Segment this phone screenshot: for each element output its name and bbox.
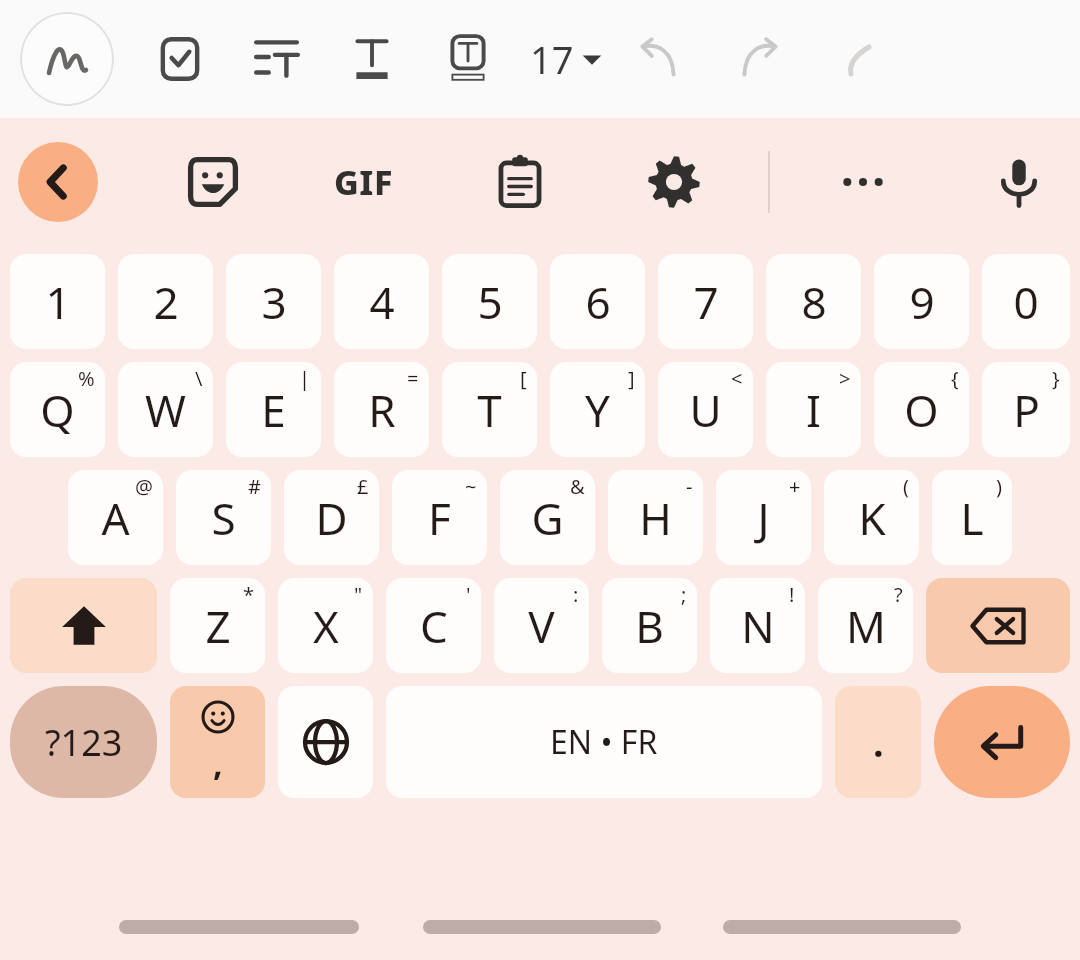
staticText: Z — [205, 596, 231, 656]
staticText: A — [101, 488, 130, 548]
staticText: R — [368, 380, 396, 440]
button[interactable]: 5 — [442, 254, 537, 349]
button[interactable]: P — [982, 362, 1070, 457]
staticText: 17 — [530, 33, 574, 85]
staticText: 9 — [909, 272, 935, 332]
button[interactable]: J — [716, 470, 811, 565]
button[interactable]: Change language — [278, 686, 373, 798]
button[interactable]: O — [874, 362, 969, 457]
staticText: O — [904, 380, 939, 440]
staticText: H — [639, 488, 672, 548]
button[interactable]: Z — [170, 578, 265, 673]
staticText: ; — [681, 581, 687, 608]
staticText: 2 — [153, 272, 179, 332]
button[interactable]: 2 — [118, 254, 213, 349]
staticText: [ — [520, 365, 527, 392]
staticText: 6 — [585, 272, 611, 332]
button[interactable]: V — [494, 578, 589, 673]
staticText: £ — [357, 473, 369, 500]
staticText: * — [243, 581, 255, 608]
button[interactable]: Clipboard — [479, 141, 561, 223]
button[interactable]: Voice input — [978, 141, 1060, 223]
button[interactable]: Handwriting — [20, 12, 114, 106]
staticText: " — [354, 581, 363, 608]
button[interactable]: K — [824, 470, 919, 565]
staticText: 8 — [801, 272, 827, 332]
button[interactable]: W — [118, 362, 213, 457]
button[interactable]: 6 — [550, 254, 645, 349]
button[interactable]: 17 — [524, 25, 609, 93]
button[interactable]: H — [608, 470, 703, 565]
staticText: E — [261, 380, 286, 440]
staticText: # — [248, 473, 261, 500]
button[interactable]: U — [658, 362, 753, 457]
staticText: 3 — [261, 272, 287, 332]
button[interactable]: GIF — [322, 141, 404, 223]
staticText: G — [531, 488, 564, 548]
staticText: 0 — [1013, 272, 1039, 332]
button[interactable]: I — [766, 362, 861, 457]
button[interactable]: Enter — [934, 686, 1070, 798]
staticText: 1 — [45, 272, 71, 332]
button[interactable]: D — [284, 470, 379, 565]
staticText: W — [145, 380, 186, 440]
staticText: ~ — [465, 473, 477, 500]
button[interactable]: ?123 — [10, 686, 157, 798]
staticText: M — [846, 596, 886, 656]
button[interactable]: More — [835, 31, 891, 87]
staticText: N — [741, 596, 775, 656]
button[interactable]: Q — [10, 362, 105, 457]
button[interactable]: Stickers — [172, 141, 254, 223]
staticText: B — [635, 596, 664, 656]
button[interactable]: Checklist — [150, 29, 210, 89]
staticText: U — [689, 380, 722, 440]
staticText: ] — [628, 365, 635, 392]
button[interactable]: N — [710, 578, 805, 673]
staticText: & — [570, 473, 585, 500]
staticText: 7 — [693, 272, 719, 332]
staticText: S — [211, 488, 236, 548]
staticText: ' — [466, 581, 471, 608]
button[interactable]: A — [68, 470, 163, 565]
button[interactable]: Text box — [438, 29, 498, 89]
button[interactable]: R — [334, 362, 429, 457]
button[interactable]: T — [442, 362, 537, 457]
button[interactable]: Text style — [246, 29, 306, 89]
staticText: { — [951, 365, 959, 392]
staticText: EN • FR — [550, 720, 658, 764]
button[interactable]: 7 — [658, 254, 753, 349]
button[interactable]: Shift — [10, 578, 157, 673]
staticText: } — [1052, 365, 1060, 392]
button[interactable]: E — [226, 362, 321, 457]
button[interactable]: Back — [18, 142, 98, 222]
button[interactable]: Backspace — [926, 578, 1070, 673]
button[interactable]: More options — [822, 141, 904, 223]
button[interactable]: G — [500, 470, 595, 565]
button[interactable]: L — [932, 470, 1012, 565]
button[interactable]: Bold underline — [342, 29, 402, 89]
staticText: 4 — [369, 272, 395, 332]
button[interactable]: C — [386, 578, 481, 673]
button[interactable]: Undo — [627, 29, 687, 89]
button[interactable]: . — [835, 686, 921, 798]
staticText: . — [873, 716, 884, 768]
button[interactable]: X — [278, 578, 373, 673]
button[interactable]: 0 — [982, 254, 1070, 349]
button[interactable]: Emoji and comma — [170, 686, 265, 798]
button[interactable]: EN • FR — [386, 686, 822, 798]
button[interactable]: S — [176, 470, 271, 565]
button[interactable]: Settings — [633, 141, 715, 223]
button[interactable]: Y — [550, 362, 645, 457]
button[interactable]: 3 — [226, 254, 321, 349]
button[interactable]: 4 — [334, 254, 429, 349]
button[interactable]: B — [602, 578, 697, 673]
button[interactable]: M — [818, 578, 913, 673]
staticText: K — [858, 488, 886, 548]
staticText: = — [407, 365, 419, 392]
button[interactable]: F — [392, 470, 487, 565]
staticText: ?123 — [45, 718, 123, 767]
button[interactable]: 9 — [874, 254, 969, 349]
button[interactable]: 1 — [10, 254, 105, 349]
button[interactable]: Redo — [731, 29, 791, 89]
button[interactable]: 8 — [766, 254, 861, 349]
